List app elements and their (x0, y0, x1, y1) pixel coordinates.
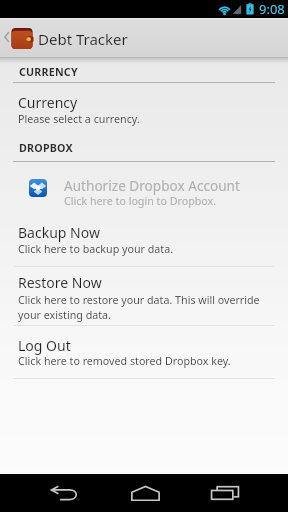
button[interactable] (0, 331, 288, 377)
staticText: Click here to removed stored Dropbox key… (18, 354, 231, 369)
staticText: Click here to backup your data. (18, 242, 173, 257)
staticText: DROPBOX (19, 141, 73, 156)
button[interactable]: Back (20, 474, 108, 512)
other: Up (4, 32, 9, 42)
button[interactable] (0, 268, 288, 325)
staticText: Restore Now (18, 273, 102, 292)
staticText: Click here to restore your data. This wi… (18, 293, 260, 308)
staticText: Backup Now (18, 223, 100, 242)
staticText: Debt Tracker (38, 29, 128, 49)
staticText: Log Out (18, 336, 71, 355)
button[interactable] (0, 219, 288, 266)
button[interactable]: Recent apps (181, 474, 269, 512)
staticText: Authorize Dropbox Account (64, 176, 240, 195)
button[interactable] (0, 167, 288, 215)
button[interactable]: Up (0, 18, 38, 58)
staticText: your existing data. (18, 308, 111, 323)
staticText: Please select a currency. (18, 112, 140, 127)
button[interactable]: Home (101, 474, 189, 512)
staticText: 9:08 (259, 0, 285, 18)
staticText: Currency (18, 93, 78, 112)
staticText: Click here to login to Dropbox. (64, 194, 217, 209)
staticText: CURRENCY (19, 65, 78, 80)
